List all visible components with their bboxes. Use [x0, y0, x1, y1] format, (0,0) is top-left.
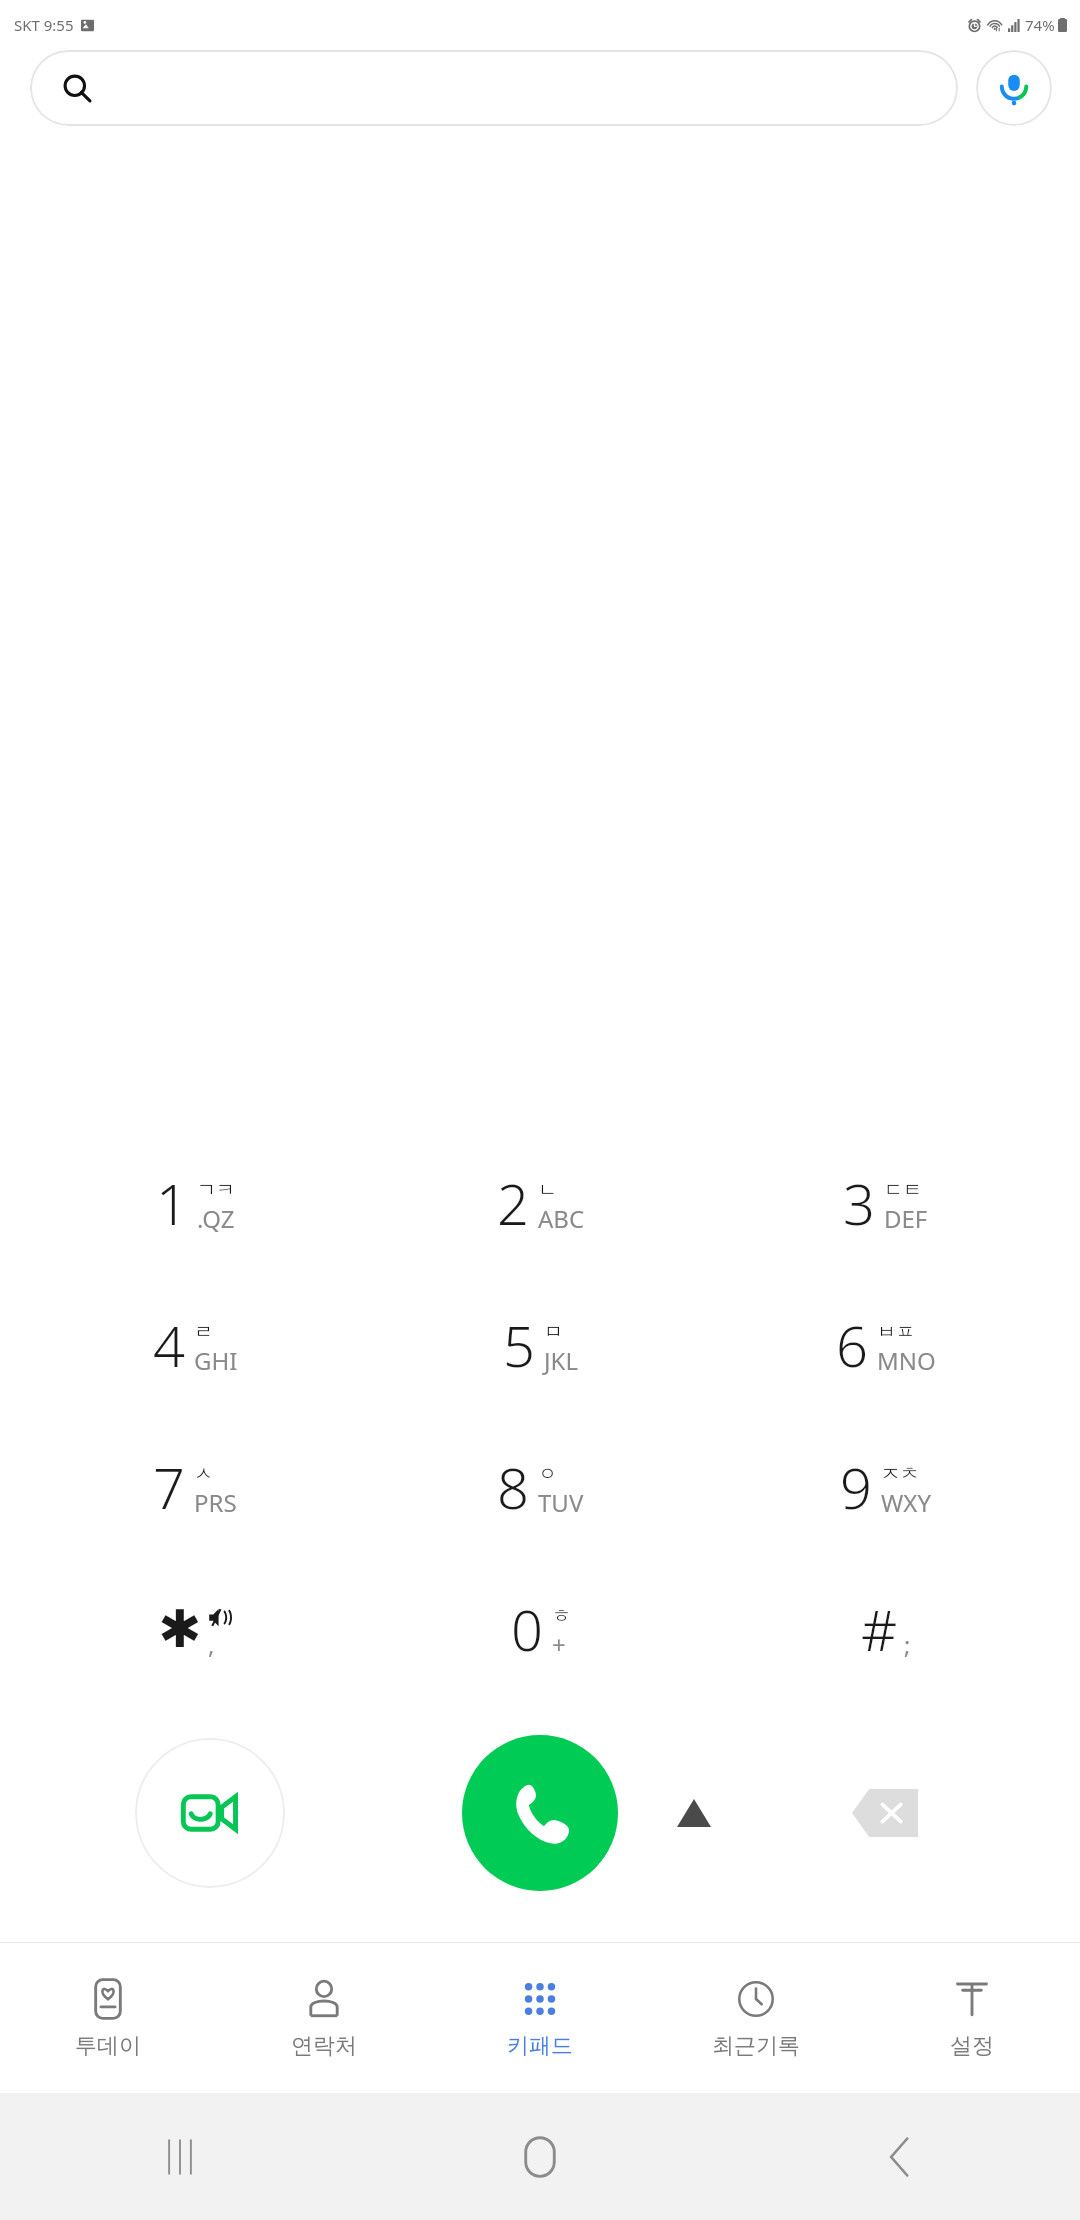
staticText: 8 — [497, 1449, 529, 1525]
button[interactable]: Voice search — [976, 50, 1052, 126]
staticText: 설정 — [950, 2032, 994, 2060]
staticText: SKT 9:55 — [14, 15, 74, 35]
button[interactable]: 9 — [713, 1416, 1058, 1558]
staticText: 5 — [503, 1307, 535, 1383]
staticText: ㅇ — [538, 1462, 557, 1486]
staticText: ; — [904, 1628, 911, 1661]
staticText: 0 — [511, 1591, 543, 1667]
button[interactable]: 키패드 — [432, 1943, 648, 2093]
staticText: ㅁ — [544, 1320, 563, 1344]
staticText: 키패드 — [507, 2032, 573, 2060]
button[interactable]: Back — [720, 2093, 1080, 2220]
staticText: 최근기록 — [712, 2032, 800, 2060]
button[interactable]: Home — [360, 2093, 720, 2220]
button[interactable]: Recents — [0, 2093, 360, 2220]
button[interactable]: 5 — [368, 1274, 713, 1416]
staticText: MNO — [877, 1344, 936, 1377]
staticText: 투데이 — [75, 2032, 141, 2060]
staticText: 4 — [153, 1307, 185, 1383]
staticText: 9 — [840, 1449, 872, 1525]
staticText: ✱ — [158, 1599, 202, 1660]
staticText: 3 — [843, 1165, 875, 1241]
button[interactable]: ✱ — [22, 1558, 368, 1700]
staticText: JKL — [544, 1344, 578, 1377]
button[interactable]: 6 — [713, 1274, 1058, 1416]
button[interactable]: Video call — [135, 1738, 285, 1888]
staticText: GHI — [194, 1344, 238, 1377]
button[interactable]: 3 — [713, 1132, 1058, 1274]
button[interactable]: 연락처 — [216, 1943, 432, 2093]
button[interactable]: 8 — [368, 1416, 713, 1558]
staticText: ㄹ — [194, 1320, 213, 1344]
staticText: ㅅ — [194, 1462, 213, 1486]
staticText: TUV — [538, 1486, 584, 1519]
staticText: ㄴ — [538, 1178, 557, 1202]
staticText: PRS — [194, 1486, 237, 1519]
button[interactable]: 1 — [22, 1132, 368, 1274]
button[interactable]: Search — [30, 50, 958, 126]
button[interactable]: 4 — [22, 1274, 368, 1416]
staticText: WXY — [881, 1486, 931, 1519]
staticText: , — [208, 1628, 215, 1661]
staticText: ㅎ — [552, 1604, 571, 1628]
staticText: + — [552, 1628, 566, 1661]
staticText: 1 — [156, 1165, 188, 1241]
button[interactable]: Call — [462, 1735, 618, 1891]
staticText: ㄱㅋ — [197, 1178, 235, 1202]
staticText: ㄷㅌ — [884, 1178, 922, 1202]
staticText: ABC — [538, 1202, 585, 1235]
button[interactable]: Backspace — [842, 1770, 928, 1856]
button[interactable]: 투데이 — [0, 1943, 216, 2093]
button[interactable]: 최근기록 — [648, 1943, 864, 2093]
staticText: 2 — [497, 1165, 529, 1241]
button[interactable]: # — [713, 1558, 1058, 1700]
button[interactable]: 7 — [22, 1416, 368, 1558]
staticText: # — [861, 1591, 898, 1667]
button[interactable]: Expand — [660, 1779, 728, 1847]
staticText: DEF — [884, 1202, 928, 1235]
staticText: ㅈㅊ — [881, 1462, 919, 1486]
staticText: .QZ — [197, 1202, 235, 1235]
button[interactable]: 2 — [368, 1132, 713, 1274]
staticText: ㅂㅍ — [877, 1320, 915, 1344]
staticText: 7 — [153, 1449, 185, 1525]
button[interactable]: 설정 — [864, 1943, 1080, 2093]
staticText: 6 — [836, 1307, 868, 1383]
staticText: 74% — [1025, 15, 1055, 35]
staticText: 연락처 — [291, 2032, 357, 2060]
button[interactable]: 0 — [368, 1558, 713, 1700]
